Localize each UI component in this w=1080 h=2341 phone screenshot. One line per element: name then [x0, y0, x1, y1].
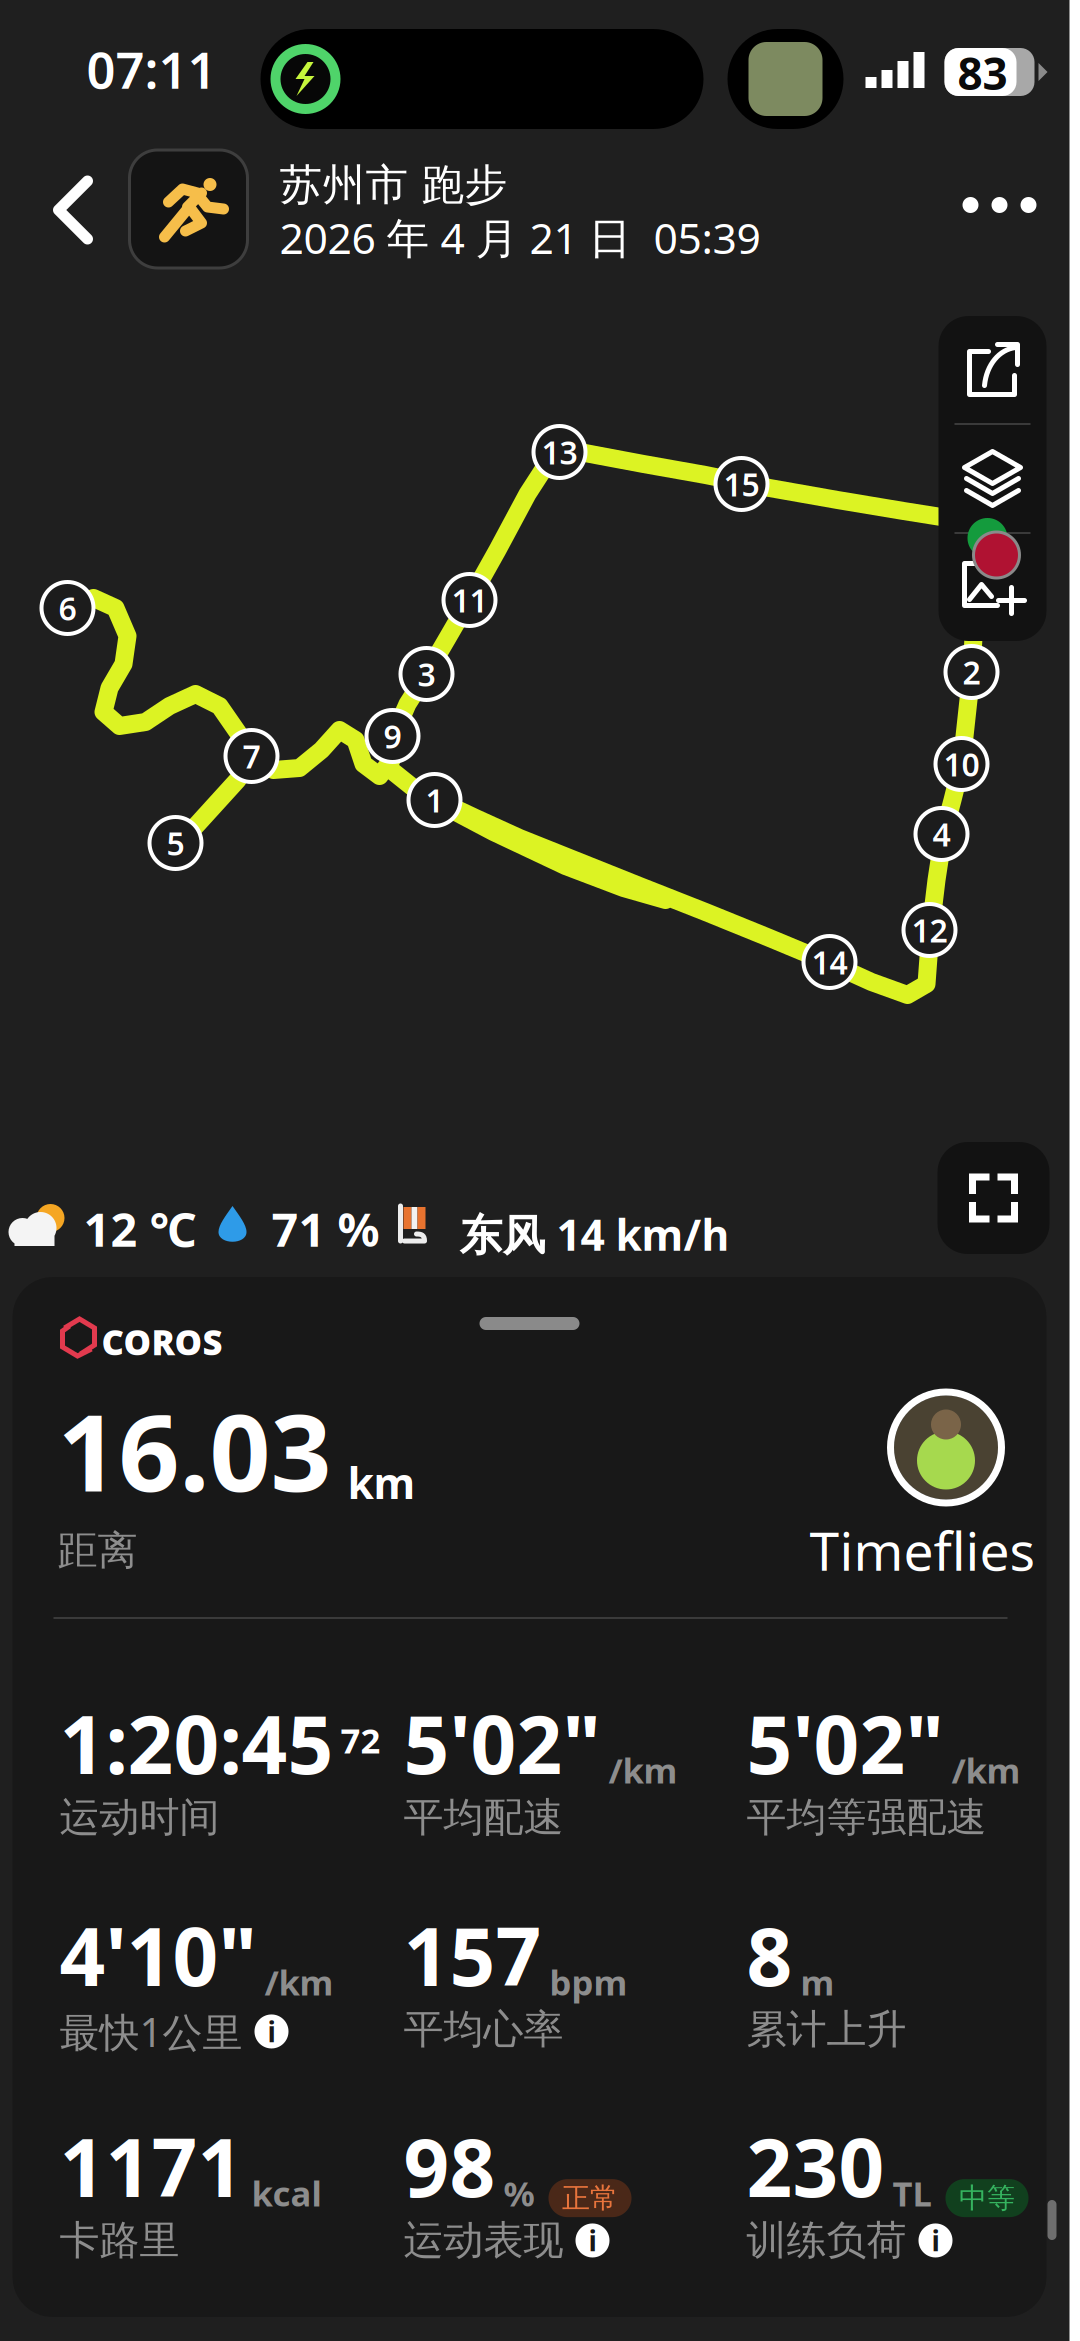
button[interactable]: Add photo	[938, 534, 1046, 641]
staticText: 平均等强配速	[746, 1793, 986, 1842]
staticText: 5'02"	[746, 1690, 943, 1796]
button[interactable]: Back	[27, 150, 119, 270]
staticText: i	[267, 2013, 275, 2050]
staticText: 157	[403, 1902, 541, 2008]
staticText: 7	[242, 735, 260, 777]
staticText: 5	[166, 822, 184, 864]
staticText: 8	[746, 1902, 792, 2008]
staticText: 16.03	[57, 1379, 331, 1521]
staticText: i	[588, 2222, 596, 2259]
staticText: COROS	[101, 1319, 222, 1365]
staticText: m	[800, 1959, 834, 2005]
staticText: 平均心率	[403, 2005, 563, 2054]
staticText: kcal	[251, 2170, 321, 2216]
staticText: 4	[932, 813, 950, 855]
staticText: 230	[746, 2113, 884, 2219]
staticText: km	[347, 1454, 415, 1511]
staticText: 4'10"	[59, 1902, 256, 2008]
staticText: 苏州市 跑步	[279, 159, 507, 211]
staticText: 2	[962, 651, 980, 693]
staticText: 卡路里	[59, 2216, 179, 2265]
staticText: 9	[383, 715, 401, 757]
staticText: 中等	[959, 2181, 1015, 2215]
staticText: /km	[608, 1747, 677, 1793]
staticText: /km	[951, 1747, 1020, 1793]
staticText: 07:11	[86, 35, 216, 103]
staticText: 98	[403, 2113, 495, 2219]
staticText: 15	[723, 463, 759, 505]
staticText: 13	[541, 431, 577, 473]
staticText: 14	[811, 941, 847, 983]
staticText: 12	[911, 909, 947, 951]
staticText: 运动表现	[403, 2216, 563, 2265]
staticText: 东风 14 km/h	[459, 1206, 729, 1262]
button[interactable]: Share activity	[938, 316, 1046, 423]
staticText: 1171	[59, 2113, 243, 2219]
button[interactable]: Map layers	[938, 425, 1046, 532]
staticText: 距离	[57, 1526, 137, 1575]
staticText: 累计上升	[746, 2005, 906, 2054]
staticText: 10	[943, 743, 979, 785]
staticText: /km	[264, 1959, 333, 2005]
button[interactable]: More options	[944, 150, 1054, 260]
staticText: 5'02"	[403, 1690, 600, 1796]
staticText: 11	[451, 579, 487, 621]
staticText: 72	[340, 1717, 380, 1763]
staticText: 83	[957, 44, 1007, 102]
staticText: 平均配速	[403, 1793, 563, 1842]
staticText: 6	[58, 587, 76, 629]
staticText: 71 %	[271, 1198, 379, 1260]
staticText: Timeflies	[809, 1515, 1035, 1585]
staticText: 2026 年 4 月 21 日 05:39	[279, 209, 760, 266]
staticText: 运动时间	[59, 1793, 219, 1842]
staticText: 1:20:45	[59, 1690, 333, 1796]
staticText: %	[503, 2170, 534, 2216]
staticText: 1	[425, 779, 443, 821]
staticText: 最快1公里	[59, 2005, 242, 2058]
staticText: 训练负荷	[746, 2216, 906, 2265]
staticText: 正常	[562, 2181, 618, 2215]
staticText: 3	[417, 653, 435, 695]
button[interactable]: Full screen map	[937, 1142, 1049, 1254]
staticText: bpm	[549, 1959, 627, 2005]
staticText: i	[931, 2222, 939, 2259]
staticText: 12 ℃	[83, 1198, 196, 1260]
staticText: TL	[892, 2170, 931, 2216]
